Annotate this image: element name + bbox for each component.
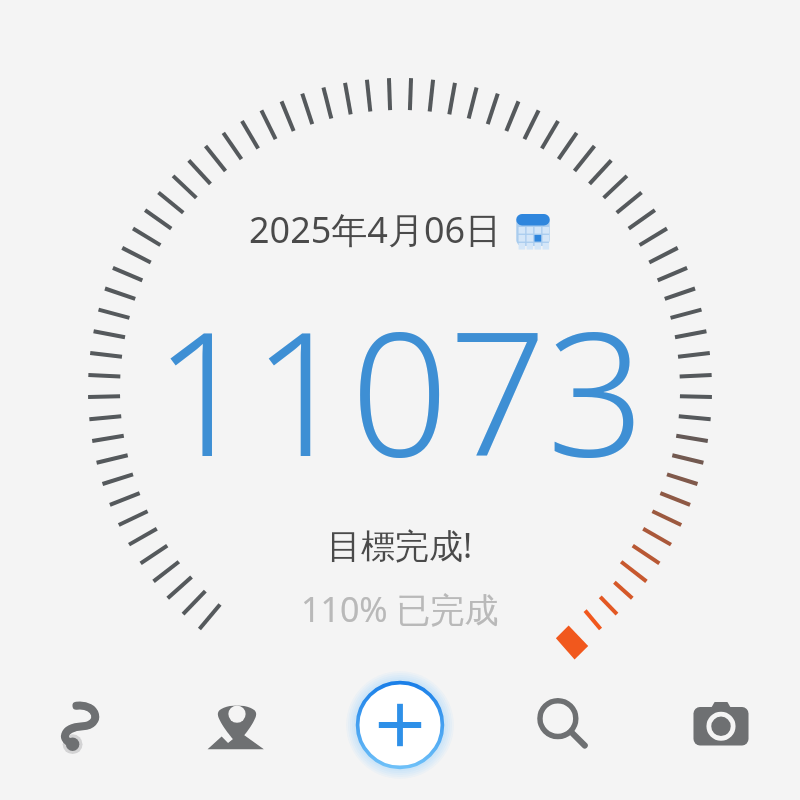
staticText: 目標完成! [327, 522, 473, 568]
staticText: 2025年4月06日 [249, 205, 502, 254]
button[interactable]: Route [31, 677, 127, 773]
staticText: 11073 [154, 272, 646, 506]
button[interactable]: Search [515, 677, 611, 773]
staticText: 110% 已完成 [301, 586, 499, 632]
button[interactable]: Places [189, 677, 285, 773]
button[interactable]: Camera [673, 677, 769, 773]
button[interactable]: Add [347, 672, 453, 778]
